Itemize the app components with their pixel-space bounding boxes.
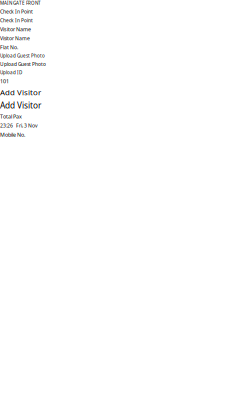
staticText: MAIN GATE FRONT — [0, 0, 41, 6]
staticText: Total Pax — [0, 113, 22, 120]
staticText: Mobile No. — [0, 131, 25, 138]
staticText: 23:26 Fri, 3 Nov — [0, 122, 38, 129]
staticText: Add Visitor — [0, 87, 41, 97]
staticText: Check In Point — [0, 8, 33, 15]
staticText: Visitor Name — [0, 26, 31, 33]
staticText: Upload Guest Photo — [0, 53, 45, 59]
staticText: Add Visitor — [0, 99, 41, 111]
staticText: Visitor Name — [0, 35, 30, 42]
staticText: Upload ID — [0, 69, 22, 76]
staticText: Upload Guest Photo — [0, 61, 46, 67]
staticText: Check In Point — [0, 17, 33, 24]
staticText: Flat No. — [0, 44, 18, 51]
staticText: 101 — [0, 78, 9, 85]
